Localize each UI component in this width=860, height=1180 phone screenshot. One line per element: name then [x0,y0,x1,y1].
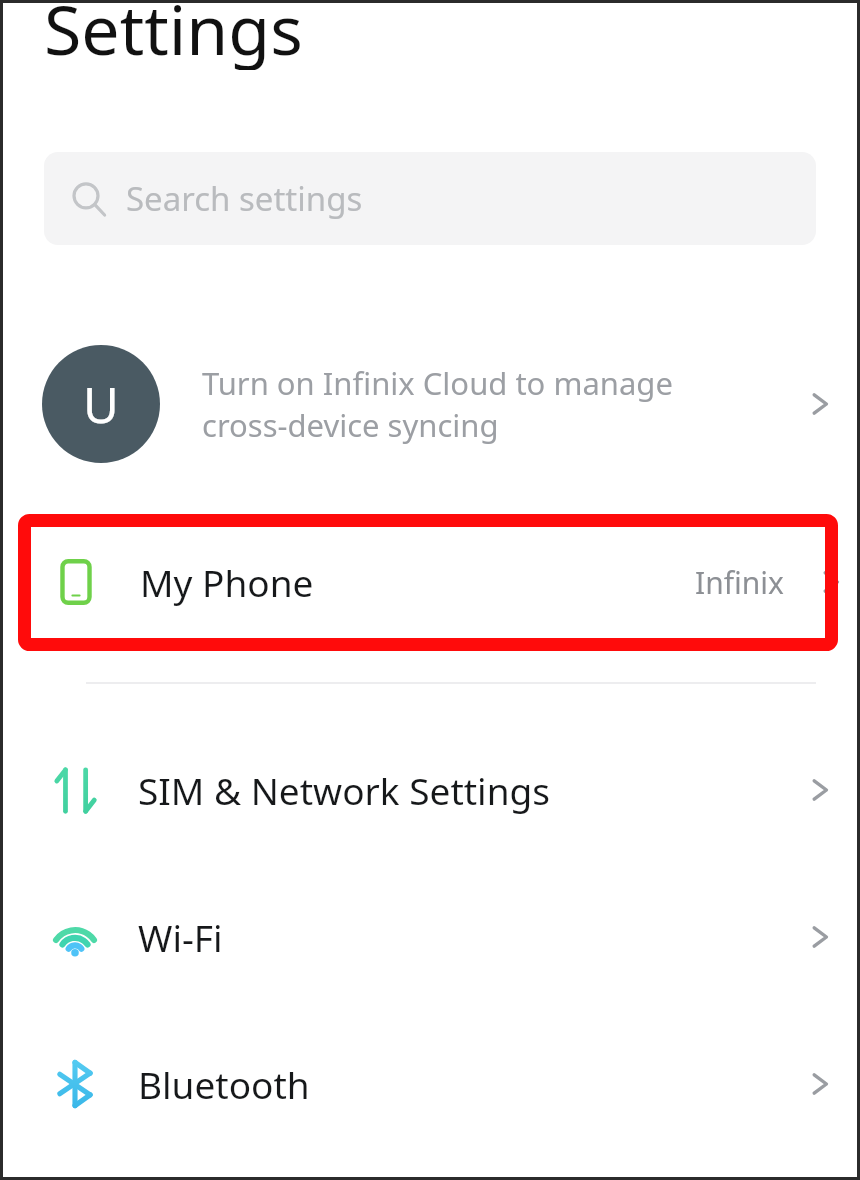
button[interactable]: Search settings [44,152,816,245]
button[interactable]: Wi-Fi [0,875,860,999]
button[interactable]: Bluetooth [0,1022,860,1146]
other: Wi-Fi [782,920,860,954]
staticText: Infinix [695,562,784,603]
staticText: My Phone [140,557,695,607]
staticText: U [83,371,119,438]
staticText: cross-device syncing [202,404,499,446]
staticText: Search settings [126,176,363,221]
button[interactable]: SIM & Network Settings [0,728,860,852]
staticText: Bluetooth [138,1059,782,1109]
staticText: Settings [44,0,303,70]
button[interactable]: U [0,330,860,478]
other: Bluetooth [782,1067,860,1101]
staticText: Wi-Fi [138,912,782,962]
staticText: Turn on Infinix Cloud to manage [202,362,673,404]
staticText: SIM & Network Settings [138,765,782,815]
button[interactable]: My Phone [0,518,860,646]
other: SIM and Network Settings [782,773,860,807]
